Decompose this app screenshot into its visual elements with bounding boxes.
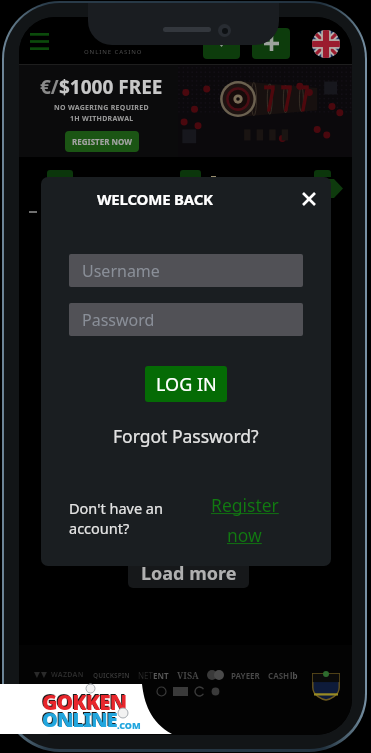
staticText: GOKKEN xyxy=(41,687,126,716)
staticText: €/ xyxy=(40,74,59,100)
staticText: ONLINE CASINO xyxy=(84,48,143,56)
button[interactable] xyxy=(47,170,73,178)
button[interactable]: CA xyxy=(75,17,151,64)
button[interactable]: REGISTER NOW xyxy=(65,131,139,152)
button[interactable]: LOG IN xyxy=(145,366,227,402)
staticText: VISA xyxy=(177,669,199,681)
staticText: CASH xyxy=(268,670,290,681)
staticText: CA xyxy=(103,26,125,48)
button[interactable]: Account xyxy=(203,28,240,59)
staticText: .COM xyxy=(117,719,141,731)
button[interactable]: Close xyxy=(297,187,321,211)
button[interactable]: Menu xyxy=(22,24,56,58)
staticText: lb xyxy=(290,670,298,681)
staticText: ONLINE xyxy=(41,705,116,732)
staticText: $1000 FREE xyxy=(59,74,163,100)
staticText: WELCOME BACK xyxy=(97,189,213,209)
staticText: NET xyxy=(138,670,153,681)
button[interactable]: Add xyxy=(252,28,290,59)
staticText: LOG IN xyxy=(156,372,217,397)
button[interactable]: Load more xyxy=(128,558,249,588)
staticText: PAYEER xyxy=(231,670,260,681)
button[interactable]: Password xyxy=(69,303,303,336)
staticText: Password xyxy=(82,309,155,331)
button[interactable]: Register xyxy=(186,493,303,547)
staticText: Username xyxy=(82,260,160,282)
button[interactable]: Forgot Password? xyxy=(113,424,259,448)
staticText: Forgot Password? xyxy=(113,424,259,448)
staticText: now xyxy=(227,523,262,547)
button[interactable] xyxy=(314,170,331,177)
staticText: Register xyxy=(211,493,279,517)
staticText: ENT xyxy=(153,670,169,681)
button[interactable]: Username xyxy=(69,254,303,287)
staticText: WAZDAN xyxy=(51,670,84,680)
staticText: NO WAGERING REQUIRED xyxy=(54,103,149,113)
staticText: GOKKEN xyxy=(42,688,127,717)
staticText: Don't have an account? xyxy=(69,498,186,539)
staticText: REGISTER NOW xyxy=(72,136,132,147)
button[interactable]: Language xyxy=(312,30,340,58)
staticText: 1H WITHDRAWAL xyxy=(70,114,134,124)
button[interactable] xyxy=(180,170,201,178)
staticText: QUICKSPIN xyxy=(93,671,130,680)
staticText: ONLINE xyxy=(42,706,117,733)
staticText: Load more xyxy=(141,561,237,586)
